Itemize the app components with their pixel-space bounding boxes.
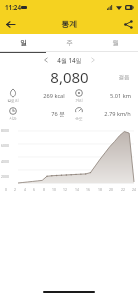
staticText: 8 xyxy=(43,187,45,192)
staticText: 4 xyxy=(24,187,26,192)
button[interactable]: Back xyxy=(0,14,20,34)
staticText: 4000 xyxy=(1,159,9,164)
staticText: 걸음 xyxy=(118,74,130,81)
staticText: 5.01 km xyxy=(110,92,131,100)
staticText: 0 xyxy=(5,187,7,192)
staticText: 시간 xyxy=(9,116,17,121)
staticText: 18 xyxy=(98,187,102,192)
button[interactable]: 일 xyxy=(0,34,46,51)
staticText: 11:24 xyxy=(5,3,21,11)
button[interactable]: 시간 xyxy=(3,105,69,123)
staticText: 76 분 xyxy=(51,110,65,118)
staticText: 6000 xyxy=(1,143,9,148)
staticText: 6 xyxy=(33,187,35,192)
staticText: 20 xyxy=(109,187,113,192)
staticText: 거리 xyxy=(75,98,83,103)
button[interactable]: Share xyxy=(118,14,138,34)
staticText: 24 xyxy=(132,187,136,192)
staticText: 8000 xyxy=(1,128,9,133)
staticText: 주 xyxy=(66,39,73,47)
button[interactable]: 거리 xyxy=(69,87,135,105)
staticText: 269 kcal xyxy=(43,92,65,100)
staticText: 2000 xyxy=(1,174,9,179)
staticText: 16 xyxy=(86,187,90,192)
button[interactable]: 주 xyxy=(46,34,92,51)
staticText: 월 xyxy=(112,39,119,47)
staticText: 14 xyxy=(75,187,79,192)
button[interactable]: 월 xyxy=(92,34,138,51)
staticText: 12 xyxy=(63,187,67,192)
staticText: 일 xyxy=(20,39,27,47)
staticText: 2 xyxy=(14,187,16,192)
staticText: 2.79 km/h xyxy=(104,110,131,118)
staticText: 속도 xyxy=(75,116,83,121)
staticText: 칼로리 xyxy=(7,98,19,103)
button[interactable]: 칼로리 xyxy=(3,87,69,105)
staticText: 8,080 xyxy=(50,67,89,87)
button[interactable]: 속도 xyxy=(69,105,135,123)
staticText: 22 xyxy=(121,187,125,192)
button[interactable]: Previous day xyxy=(40,54,52,66)
staticText: 통계 xyxy=(61,19,77,29)
staticText: 10 xyxy=(52,187,56,192)
staticText: 4월 14일 xyxy=(57,56,82,64)
button[interactable]: Next day xyxy=(87,54,99,66)
